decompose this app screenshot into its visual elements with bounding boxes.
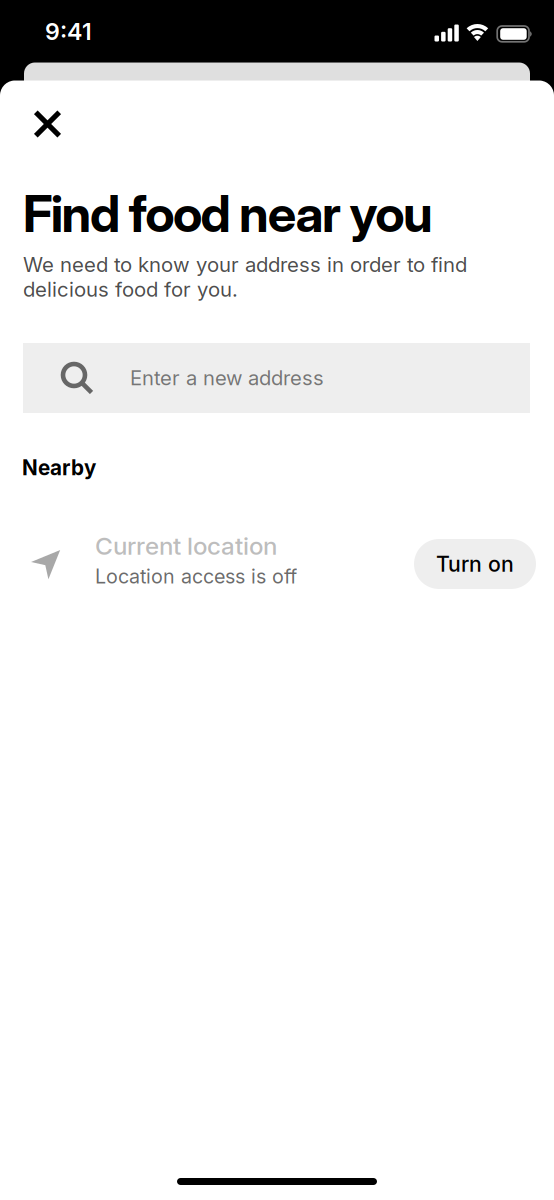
button[interactable]: Close [26, 102, 69, 145]
staticText: Nearby [22, 455, 96, 480]
button[interactable]: Current location [23, 531, 414, 593]
button[interactable]: Enter a new address [23, 343, 530, 413]
button[interactable]: Turn on [414, 539, 536, 589]
staticText: We need to know your address in order to… [23, 252, 467, 302]
staticText: Current location [95, 531, 277, 561]
staticText: Find food near you [23, 183, 433, 244]
staticText: Enter a new address [130, 366, 324, 390]
staticText: Location access is off [95, 564, 297, 588]
staticText: 9:41 [45, 17, 92, 46]
staticText: Turn on [436, 551, 514, 577]
